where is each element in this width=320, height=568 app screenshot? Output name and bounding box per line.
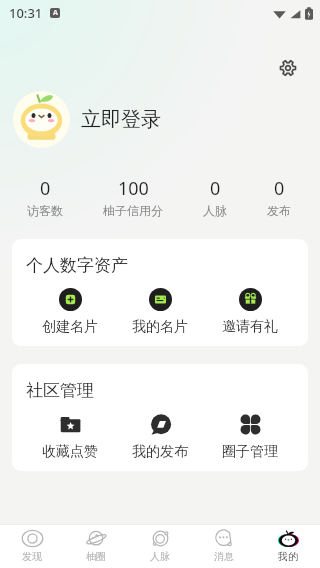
- button[interactable]: 0: [267, 176, 291, 218]
- staticText: 邀请有礼: [222, 318, 278, 336]
- button[interactable]: 圈子管理: [205, 413, 295, 461]
- staticText: 个人数字资产: [26, 255, 128, 276]
- staticText: 消息: [214, 550, 234, 563]
- button[interactable]: 柚圈: [64, 525, 128, 568]
- button[interactable]: 消息: [192, 525, 256, 568]
- staticText: A: [53, 8, 58, 18]
- button[interactable]: 100: [103, 176, 163, 218]
- staticText: 发现: [22, 550, 42, 563]
- button[interactable]: 收藏点赞: [25, 413, 115, 461]
- staticText: 我的: [278, 550, 298, 563]
- staticText: 人脉: [203, 203, 227, 218]
- staticText: 访客数: [27, 203, 63, 218]
- staticText: 发布: [267, 203, 291, 218]
- staticText: 0: [274, 176, 285, 201]
- staticText: 立即登录: [81, 107, 161, 132]
- button[interactable]: 我的名片: [115, 288, 205, 336]
- staticText: 0: [210, 176, 221, 201]
- staticText: 社区管理: [26, 380, 94, 401]
- staticText: 柚子信用分: [103, 203, 163, 218]
- button[interactable]: 发现: [0, 525, 64, 568]
- staticText: 我的名片: [132, 318, 188, 336]
- button[interactable]: 0: [203, 176, 227, 218]
- button[interactable]: 立即登录: [81, 107, 161, 132]
- button[interactable]: 0: [27, 176, 63, 218]
- staticText: 柚圈: [86, 550, 106, 563]
- staticText: 10:31: [9, 4, 43, 22]
- button[interactable]: 人脉: [128, 525, 192, 568]
- button[interactable]: 邀请有礼: [205, 288, 295, 336]
- staticText: 人脉: [150, 550, 170, 563]
- button[interactable]: 创建名片: [25, 288, 115, 336]
- staticText: 我的发布: [132, 443, 188, 461]
- staticText: 创建名片: [42, 318, 98, 336]
- button[interactable]: 我的: [256, 525, 320, 568]
- staticText: 收藏点赞: [42, 443, 98, 461]
- staticText: 0: [40, 176, 51, 201]
- button[interactable]: 我的发布: [115, 413, 205, 461]
- button[interactable]: Settings: [273, 53, 303, 83]
- staticText: 圈子管理: [222, 443, 278, 461]
- staticText: 100: [118, 176, 149, 201]
